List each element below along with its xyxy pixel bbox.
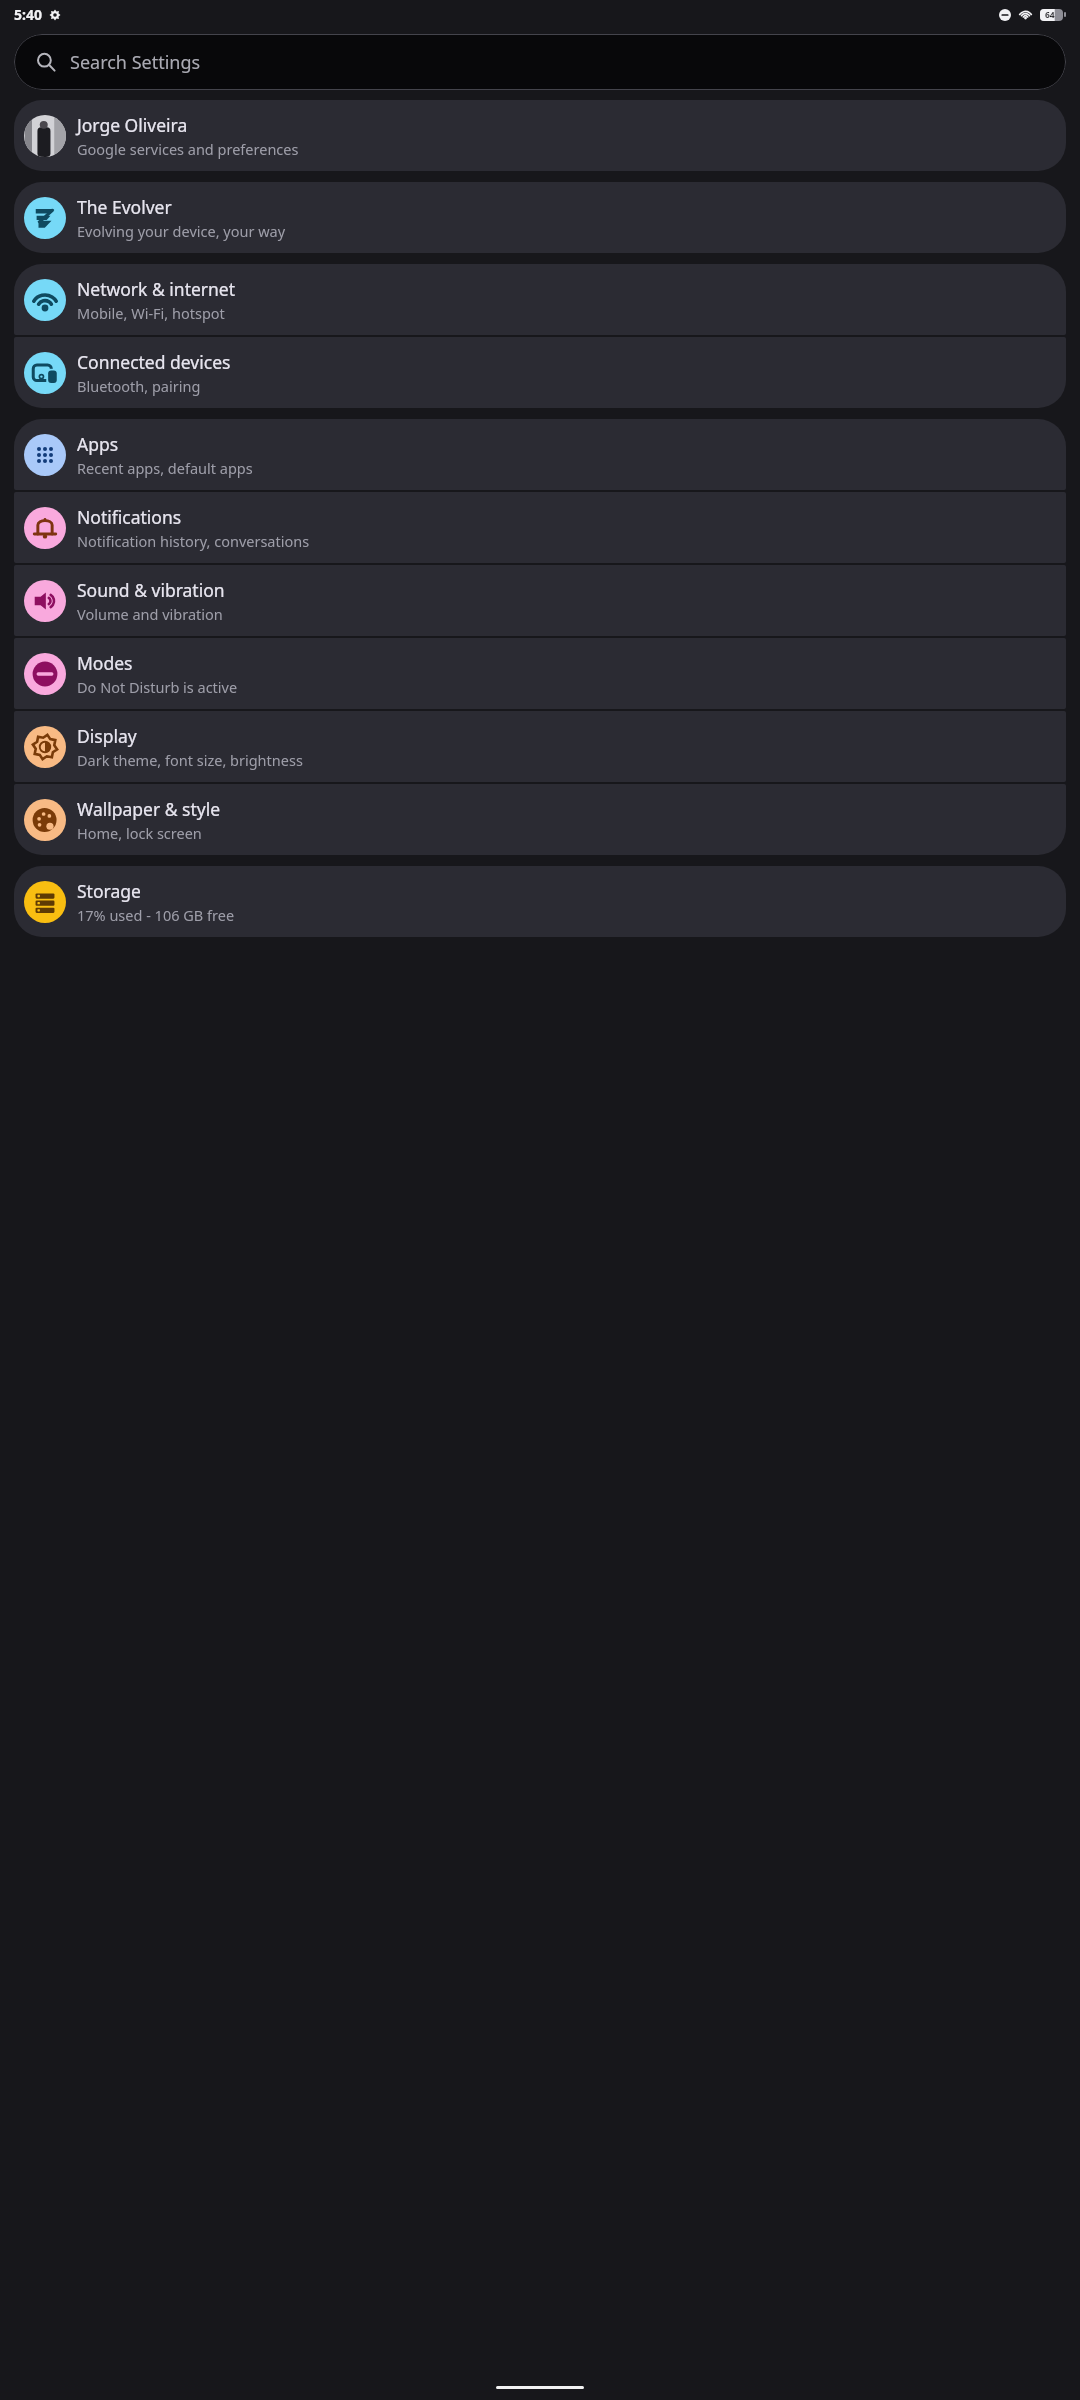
- staticText: Evolving your device, your way: [77, 221, 286, 241]
- staticText: 64: [1045, 9, 1055, 21]
- staticText: Dark theme, font size, brightness: [77, 750, 303, 770]
- staticText: Network & internet: [77, 277, 236, 301]
- button[interactable]: Apps: [14, 419, 1066, 490]
- staticText: The Evolver: [77, 195, 172, 219]
- staticText: Wallpaper & style: [77, 797, 221, 821]
- staticText: Home, lock screen: [77, 823, 202, 843]
- staticText: 5:40: [14, 5, 42, 24]
- staticText: Apps: [77, 432, 119, 456]
- button[interactable]: Notifications: [14, 492, 1066, 563]
- staticText: Google services and preferences: [77, 139, 299, 159]
- button[interactable]: Search: [14, 34, 1066, 90]
- button[interactable]: Wallpaper & style: [14, 784, 1066, 855]
- staticText: Notifications: [77, 505, 182, 529]
- button[interactable]: Display: [14, 711, 1066, 782]
- button[interactable]: The Evolver: [14, 182, 1066, 253]
- staticText: Notification history, conversations: [77, 531, 310, 551]
- staticText: 17% used - 106 GB free: [77, 905, 235, 925]
- button[interactable]: Connected devices: [14, 337, 1066, 408]
- button[interactable]: Modes: [14, 638, 1066, 709]
- staticText: Volume and vibration: [77, 604, 223, 624]
- button[interactable]: Jorge Oliveira: [14, 100, 1066, 171]
- staticText: Sound & vibration: [77, 578, 225, 602]
- button[interactable]: Storage: [14, 866, 1066, 937]
- button[interactable]: Network & internet: [14, 264, 1066, 335]
- staticText: Do Not Disturb is active: [77, 677, 238, 697]
- staticText: Recent apps, default apps: [77, 458, 253, 478]
- staticText: Display: [77, 724, 137, 748]
- staticText: Mobile, Wi-Fi, hotspot: [77, 303, 225, 323]
- staticText: Jorge Oliveira: [77, 113, 188, 137]
- staticText: Storage: [77, 879, 141, 903]
- other: Search: [36, 52, 56, 72]
- staticText: Search Settings: [70, 50, 201, 75]
- staticText: Bluetooth, pairing: [77, 376, 201, 396]
- staticText: Modes: [77, 651, 133, 675]
- button[interactable]: Sound & vibration: [14, 565, 1066, 636]
- staticText: Connected devices: [77, 350, 231, 374]
